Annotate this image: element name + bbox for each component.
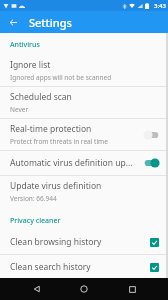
button[interactable]: Real-time protection (0, 119, 168, 150)
staticText: Settings (29, 15, 72, 30)
button[interactable]: Recent apps (121, 278, 143, 300)
button[interactable]: Clean search history (0, 255, 168, 278)
staticText: Scheduled scan (10, 91, 72, 103)
staticText: Version: 66.944 (10, 194, 57, 203)
button[interactable]: Scheduled scan (0, 87, 168, 118)
staticText: Protect from threats in real time (10, 137, 108, 146)
button[interactable]: Automatic virus definition updates (0, 151, 168, 175)
button[interactable]: Back (26, 278, 48, 300)
staticText: Antivirus (10, 40, 40, 50)
button[interactable]: Toggle off (143, 129, 160, 141)
staticText: 3:43 (154, 2, 166, 10)
button[interactable]: Home (73, 278, 95, 300)
staticText: Automatic virus definition updates (10, 157, 137, 169)
staticText: Clean search history (10, 261, 142, 273)
staticText: Clean browsing history (10, 236, 142, 248)
staticText: Ignore list (10, 59, 51, 71)
button[interactable]: Checked (148, 261, 160, 273)
button[interactable]: Ignore list (0, 55, 168, 86)
button[interactable]: Update virus definition (0, 176, 168, 207)
button[interactable]: Back (5, 14, 21, 30)
button[interactable]: Clean browsing history (0, 230, 168, 254)
button[interactable]: Toggle on (143, 157, 160, 169)
button[interactable]: Checked (148, 236, 160, 248)
staticText: Update virus definition (10, 180, 102, 192)
staticText: Never (10, 105, 29, 114)
staticText: Real-time protection (10, 123, 92, 135)
staticText: Privacy cleaner (10, 216, 61, 226)
staticText: Ignored apps will not be scanned (10, 73, 112, 82)
